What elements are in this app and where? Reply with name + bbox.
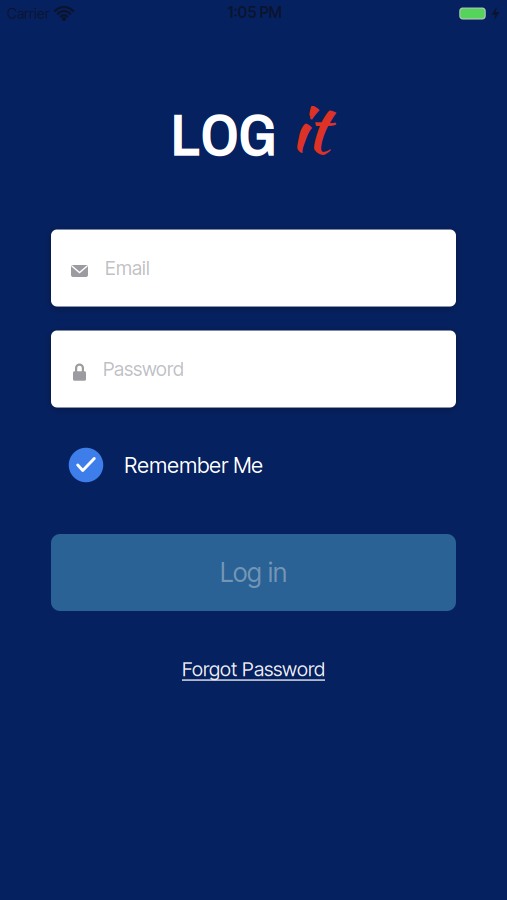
staticText: Log in [220, 557, 287, 588]
staticText: 1:05 PM [227, 3, 281, 22]
button[interactable]: Remember Me [69, 448, 399, 482]
button[interactable]: Password [51, 330, 456, 407]
staticText: LOG [170, 94, 276, 174]
button[interactable]: Log in [51, 534, 456, 611]
button[interactable]: Email [51, 229, 456, 306]
button[interactable]: Forgot Password [182, 657, 325, 681]
staticText: it [290, 80, 328, 176]
staticText: Password [103, 357, 184, 381]
staticText: Remember Me [124, 452, 263, 478]
staticText: Forgot Password [182, 657, 325, 681]
staticText: Carrier [7, 5, 50, 22]
staticText: Email [105, 256, 150, 280]
